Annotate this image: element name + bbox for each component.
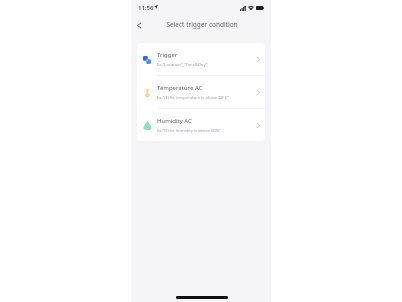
button[interactable]: Temperature AC <box>137 76 265 108</box>
staticText: Temperature AC <box>157 84 203 92</box>
staticText: Ex:"If the humidity is above 60%" <box>157 128 221 134</box>
staticText: Ex:"If the temperature is above 28°C" <box>157 95 230 101</box>
button[interactable]: Back <box>131 16 146 34</box>
staticText: Humidity AC <box>157 117 192 125</box>
staticText: Trigger <box>157 51 178 59</box>
staticText: 11:56 <box>138 4 154 12</box>
staticText: Select trigger condition <box>166 20 238 29</box>
button[interactable]: Trigger <box>137 43 265 75</box>
button[interactable]: Humidity AC <box>137 109 265 141</box>
staticText: Ex:"Location","Time&Day" <box>157 62 208 68</box>
